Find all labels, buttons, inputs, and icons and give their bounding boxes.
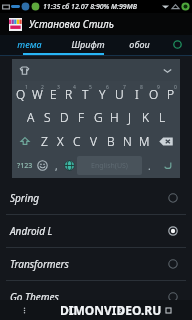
button[interactable]: Collapse keyboard	[159, 62, 175, 78]
button[interactable]: Shift	[13, 129, 36, 153]
button[interactable]: Back	[96, 300, 144, 320]
button[interactable]: 5	[77, 81, 94, 105]
staticText: K	[142, 109, 150, 125]
button[interactable]: Change language	[62, 153, 77, 178]
staticText: I	[135, 86, 139, 102]
staticText: Шрифт	[71, 38, 105, 50]
button[interactable]: Loading	[162, 35, 192, 53]
staticText: .	[148, 159, 151, 173]
button[interactable]: M	[136, 129, 153, 153]
staticText: H	[110, 109, 119, 125]
button[interactable]: Android L	[0, 214, 192, 247]
staticText: P	[167, 86, 175, 102]
staticText: J	[128, 109, 132, 125]
staticText: Transformers	[10, 257, 69, 271]
staticText: V	[90, 133, 97, 149]
button[interactable]: B	[102, 129, 119, 153]
button[interactable]: Шрифт	[59, 35, 117, 53]
button[interactable]: N	[119, 129, 136, 153]
button[interactable]: X	[52, 129, 68, 153]
button[interactable]: L	[154, 105, 170, 129]
button[interactable]: Spring	[0, 181, 192, 214]
staticText: 2	[41, 84, 44, 91]
staticText: Y	[99, 86, 106, 102]
staticText: O	[149, 86, 159, 102]
staticText: C	[73, 133, 81, 149]
staticText: 8	[140, 84, 143, 91]
staticText: L	[159, 109, 166, 125]
button[interactable]: Home	[48, 300, 96, 320]
staticText: F	[78, 109, 85, 125]
button[interactable]: 2	[29, 81, 45, 105]
button[interactable]: 1	[13, 81, 29, 105]
staticText: Установка Стиль	[29, 17, 114, 31]
button[interactable]: тема	[0, 35, 59, 53]
staticText: W	[32, 86, 43, 102]
button[interactable]: ?123	[14, 153, 35, 178]
staticText: G	[94, 109, 103, 125]
button[interactable]: H	[106, 105, 122, 129]
button[interactable]: F	[73, 105, 90, 129]
button[interactable]: G	[90, 105, 106, 129]
staticText: 6	[106, 84, 109, 91]
button[interactable]: 0	[162, 81, 179, 105]
staticText: 11:35 сб 12.07 8:90% M:99MB	[43, 2, 137, 12]
staticText: 7	[123, 84, 126, 91]
button[interactable]: .	[142, 153, 156, 178]
button[interactable]: Emoji	[35, 153, 50, 178]
button[interactable]: Z	[36, 129, 52, 153]
button[interactable]: 9	[145, 81, 162, 105]
staticText: T	[82, 86, 89, 102]
staticText: тема	[17, 38, 42, 50]
staticText: 5	[89, 84, 92, 91]
staticText: DIMONVIDEO.RU	[60, 302, 162, 318]
staticText: D	[60, 109, 69, 125]
staticText: Q	[16, 86, 26, 102]
button[interactable]: K	[138, 105, 154, 129]
staticText: обои	[129, 38, 150, 50]
button[interactable]: S	[39, 105, 56, 129]
button[interactable]: ,	[50, 153, 62, 178]
staticText: 9	[157, 84, 160, 91]
button[interactable]: J	[122, 105, 138, 129]
button[interactable]: 3	[45, 81, 61, 105]
button[interactable]: D	[56, 105, 73, 129]
button[interactable]: Go Themes	[0, 280, 192, 313]
staticText: S	[44, 109, 51, 125]
staticText: ,	[55, 159, 58, 173]
button[interactable]: 6	[94, 81, 111, 105]
button[interactable]: Backspace	[153, 129, 179, 153]
staticText: 4	[73, 84, 76, 91]
staticText: A	[27, 109, 35, 125]
staticText: English(US)	[91, 161, 128, 171]
button[interactable]: 8	[128, 81, 145, 105]
staticText: 3	[57, 84, 60, 91]
staticText: R	[65, 86, 73, 102]
button[interactable]: Transformers	[0, 247, 192, 280]
staticText: Android L	[10, 224, 53, 238]
button[interactable]: Enter	[156, 153, 178, 178]
button[interactable]: A	[22, 105, 39, 129]
staticText: X	[57, 133, 64, 149]
button[interactable]: Recent apps	[144, 300, 192, 320]
staticText: N	[123, 133, 132, 149]
button[interactable]: обои	[117, 35, 162, 53]
staticText: ?123	[17, 161, 33, 171]
staticText: U	[115, 86, 124, 102]
button[interactable]: 7	[111, 81, 128, 105]
staticText: E	[50, 86, 57, 102]
button[interactable]: Theme	[17, 63, 31, 77]
staticText: 1	[25, 84, 28, 91]
staticText: M	[139, 133, 150, 149]
staticText: Spring	[10, 191, 39, 205]
staticText: B	[107, 133, 115, 149]
button[interactable]: 4	[61, 81, 77, 105]
button[interactable]: Menu	[0, 300, 48, 320]
staticText: Z	[41, 133, 48, 149]
staticText: Go Themes	[10, 290, 59, 304]
button[interactable]: English(US)	[77, 156, 142, 175]
staticText: 0	[174, 84, 177, 91]
button[interactable]: C	[68, 129, 85, 153]
button[interactable]: V	[85, 129, 102, 153]
